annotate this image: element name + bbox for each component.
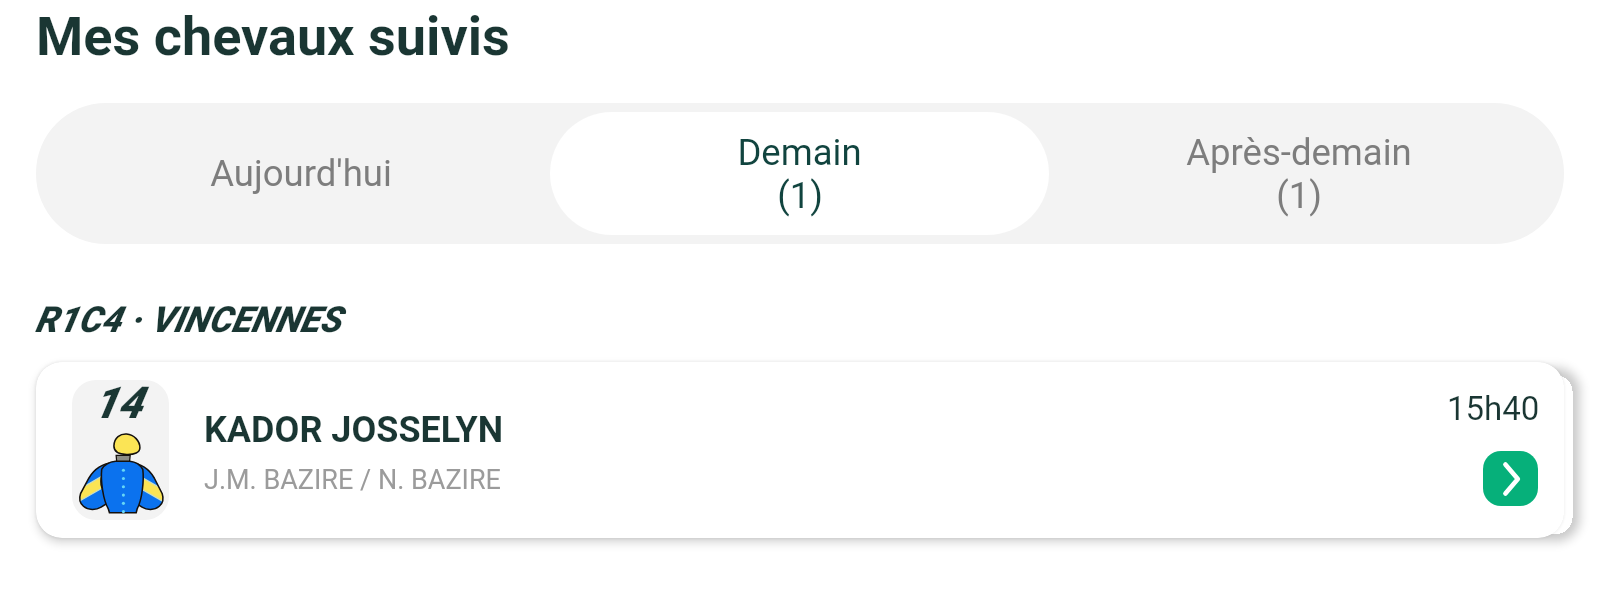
button[interactable]: Voir la course xyxy=(1483,451,1538,506)
staticText: KADOR JOSSELYN xyxy=(204,409,504,451)
staticText: Demain xyxy=(737,131,862,174)
staticText: Aujourd'hui xyxy=(210,152,392,195)
staticText: (1) xyxy=(777,174,823,217)
staticText: 14 xyxy=(93,380,143,429)
button[interactable]: Après-demain xyxy=(1049,112,1548,235)
button[interactable]: Demain xyxy=(550,112,1049,235)
button[interactable]: 14 xyxy=(36,362,1564,538)
staticText: Après-demain xyxy=(1186,131,1412,174)
staticText: J.M. BAZIRE / N. BAZIRE xyxy=(204,464,501,496)
staticText: 15h40 xyxy=(1447,389,1540,428)
button[interactable]: Aujourd'hui xyxy=(52,112,550,235)
staticText: (1) xyxy=(1276,174,1322,217)
staticText: Mes chevaux suivis xyxy=(36,5,510,68)
staticText: R1C4 · VINCENNES xyxy=(35,299,342,341)
